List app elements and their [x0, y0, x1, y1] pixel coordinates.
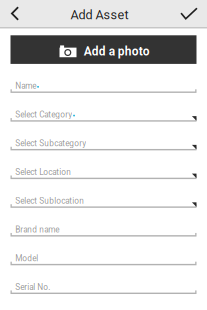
button[interactable]: Add a photo — [10, 35, 196, 64]
button[interactable]: Select Sublocation — [10, 186, 196, 214]
staticText: Serial No. — [15, 282, 50, 292]
staticText: Model — [15, 253, 38, 263]
button[interactable]: Serial No. — [10, 272, 196, 301]
staticText: Add Asset — [70, 7, 128, 22]
staticText: Select Category — [15, 110, 72, 119]
staticText: Select Location — [15, 167, 71, 177]
button[interactable]: Select Category — [10, 100, 196, 128]
button[interactable]: Save — [175, 0, 203, 27]
staticText: Name — [15, 81, 36, 91]
button[interactable]: Select Location — [10, 157, 196, 186]
staticText: Select Subcategory — [15, 139, 86, 148]
button[interactable]: Model — [10, 243, 196, 272]
button[interactable]: Back — [4, 0, 26, 27]
button[interactable]: Name — [10, 71, 196, 100]
staticText: Brand name — [15, 225, 59, 234]
button[interactable]: Select Subcategory — [10, 128, 196, 157]
button[interactable]: Brand name — [10, 214, 196, 243]
staticText: Select Sublocation — [15, 196, 84, 206]
staticText: Add a photo — [84, 44, 150, 58]
